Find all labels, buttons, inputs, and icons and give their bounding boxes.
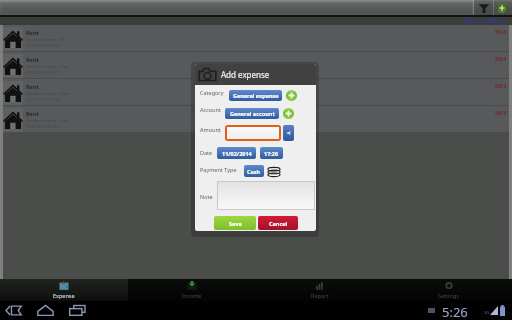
staticText: 550 € [495, 83, 507, 89]
button[interactable]: Filter [474, 0, 493, 15]
staticText: 550 € [495, 29, 507, 35]
staticText: General account - Visa [26, 37, 68, 42]
button[interactable]: 11/02/2014 [217, 147, 256, 159]
button[interactable]: Home [37, 304, 54, 316]
staticText: 5:26 [442, 303, 468, 320]
button[interactable]: Recent apps [69, 303, 86, 317]
button[interactable]: Cancel [258, 216, 298, 230]
staticText: Amount [200, 126, 221, 133]
staticText: Note [200, 193, 213, 200]
button[interactable]: Report [256, 279, 384, 301]
button[interactable] [217, 181, 315, 210]
button[interactable]: Add expense [494, 0, 512, 15]
staticText: 02/02/2014 01:53 [26, 43, 59, 48]
staticText: Report [311, 292, 329, 299]
staticText: Add expense [221, 69, 270, 80]
staticText: Rent [26, 83, 39, 90]
staticText: General account - Visa [26, 118, 68, 123]
staticText: Total : 2200.0 € [463, 17, 507, 25]
staticText: General account [230, 110, 275, 117]
button[interactable] [225, 125, 281, 141]
button[interactable]: Rent [3, 106, 509, 133]
staticText: Date [200, 149, 213, 156]
button[interactable]: Settings [384, 279, 512, 301]
staticText: 02/12/2013 01:53 [26, 70, 59, 75]
button[interactable]: 17:26 [260, 147, 283, 159]
button[interactable]: Income [128, 279, 256, 301]
button[interactable]: Back [5, 304, 22, 317]
staticText: Cancel [269, 220, 288, 227]
staticText: Category [200, 89, 224, 96]
staticText: 3G [484, 310, 490, 315]
staticText: Payment Type [200, 166, 237, 173]
staticText: Cash [247, 168, 261, 175]
staticText: 550 € [495, 56, 507, 62]
button[interactable]: Rent [3, 52, 509, 79]
staticText: 550 € [495, 110, 507, 116]
staticText: 17:26 [264, 150, 279, 157]
staticText: Rent [26, 56, 39, 63]
button[interactable]: Backspace [283, 125, 294, 141]
button[interactable]: General account [225, 108, 279, 119]
staticText: Rent [26, 110, 39, 117]
button[interactable]: Expense [0, 279, 128, 301]
staticText: Account [200, 106, 221, 113]
staticText: Settings [438, 292, 459, 299]
staticText: Income [182, 292, 202, 299]
staticText: 02/01/2013 01:53 [26, 124, 59, 129]
button[interactable]: Save [214, 216, 256, 230]
button[interactable]: Rent [3, 79, 509, 106]
staticText: 02/11/2013 01:53 [26, 97, 59, 102]
staticText: 11/02/2014 [222, 150, 252, 157]
button[interactable]: General expense [229, 90, 282, 101]
staticText: Rent [26, 29, 39, 36]
staticText: < [287, 129, 291, 137]
button[interactable]: Rent [3, 25, 509, 52]
staticText: General account - Visa [26, 64, 68, 69]
button[interactable]: Cash [244, 165, 264, 177]
staticText: General account - Visa [26, 91, 68, 96]
staticText: Expense [53, 292, 75, 299]
staticText: General expense [233, 92, 279, 99]
staticText: Save [229, 220, 242, 227]
